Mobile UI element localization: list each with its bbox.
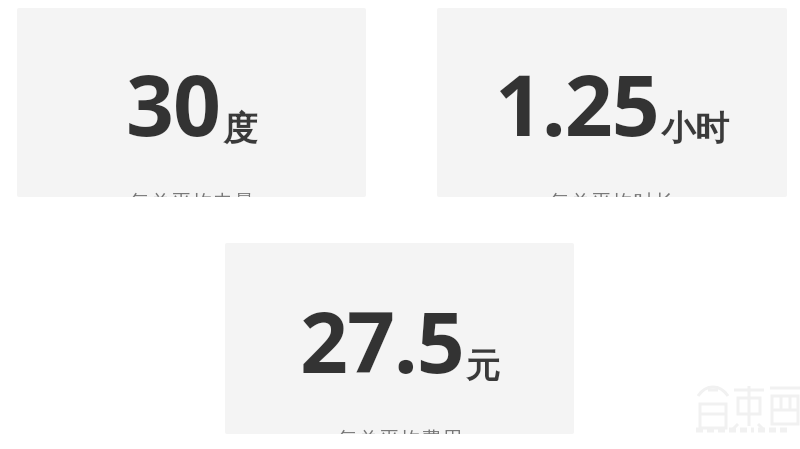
button[interactable]: 30 <box>17 8 366 197</box>
staticText: 元 <box>466 344 500 387</box>
staticText: 每单平均电量 <box>129 190 255 197</box>
staticText: 27.5 <box>300 283 464 397</box>
staticText: 每单平均费用 <box>337 427 463 434</box>
staticText: 每单平均时长 <box>549 190 675 197</box>
button[interactable]: 27.5 <box>225 243 574 434</box>
staticText: 1.25 <box>495 46 659 160</box>
staticText: 30 <box>126 46 221 160</box>
other: 智东西 zhidx.com watermark <box>688 372 798 434</box>
staticText: 小时 <box>661 107 729 150</box>
staticText: 度 <box>223 107 257 150</box>
button[interactable]: 1.25 <box>437 8 787 197</box>
